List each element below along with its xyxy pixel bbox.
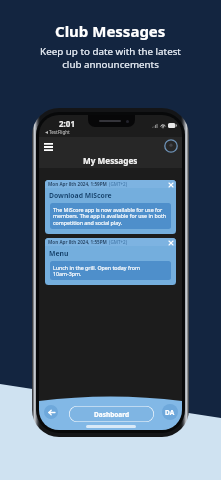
staticText: Keep up to date with the latest club ann… [40,45,181,71]
staticText: DA [165,408,175,417]
staticText: Mon Apr 8th 2024, 1:59PM [48,181,107,187]
staticText: My Messages [83,155,138,166]
button[interactable]: Profile [164,139,178,153]
staticText: Menu [49,249,69,258]
button[interactable]: DA [162,404,178,420]
staticText: 2:01 [59,118,75,129]
staticText: Lunch in the grill. Open today from 10am… [53,264,168,277]
staticText: (GMT+2) [109,239,128,245]
staticText: Download MiScore [49,191,112,200]
staticText: The MiScore app is now available for use… [53,206,168,226]
staticText: Club Messages [55,21,166,41]
button[interactable]: Dashboard [69,406,154,422]
button[interactable]: Dismiss [167,181,174,188]
button[interactable]: Menu [40,139,56,155]
button[interactable]: Dismiss [167,239,174,246]
button[interactable]: Mon Apr 8th 2024, 1:55PM [45,238,176,285]
button[interactable]: Mon Apr 8th 2024, 1:59PM [45,180,176,234]
staticText: TestFlight [49,129,70,135]
staticText: Dashboard [94,410,130,419]
button[interactable]: Back [44,405,58,419]
staticText: (GMT+2) [109,181,128,187]
staticText: Mon Apr 8th 2024, 1:55PM [48,239,107,245]
